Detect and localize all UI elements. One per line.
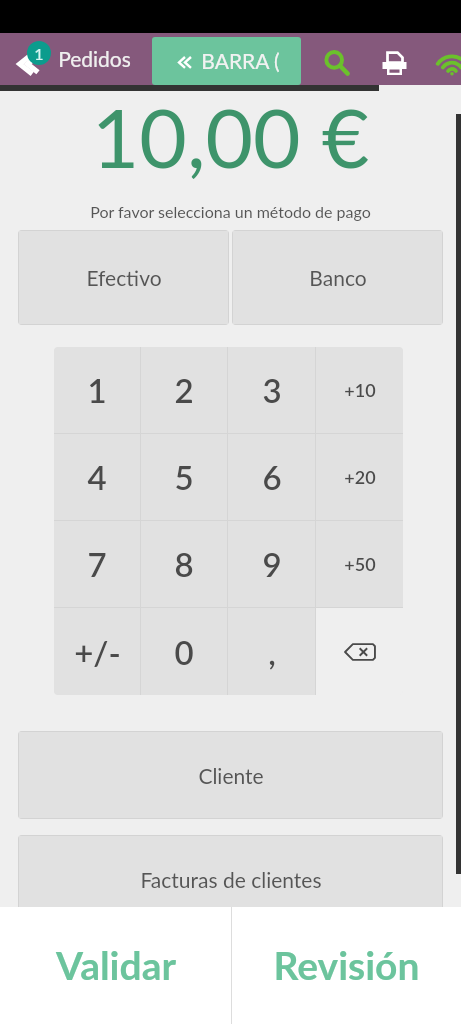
staticText: Facturas de clientes [140, 867, 322, 892]
button[interactable]: Buscar [311, 33, 363, 85]
staticText: 4 [87, 457, 107, 497]
button[interactable]: , [228, 608, 315, 695]
button[interactable]: 6 [228, 434, 315, 520]
staticText: 7 [87, 544, 107, 584]
staticText: 8 [174, 544, 194, 584]
button[interactable]: Facturas de clientes [19, 836, 442, 922]
staticText: Por favor selecciona un método de pago [0, 202, 461, 221]
button[interactable]: Cliente [19, 732, 442, 818]
staticText: +10 [344, 379, 376, 401]
other: Borrar [343, 635, 377, 669]
button[interactable]: +10 [316, 347, 403, 433]
button[interactable]: 8 [141, 521, 227, 607]
staticText: Revisión [273, 942, 420, 989]
staticText: Pedidos [58, 46, 131, 71]
button[interactable]: Validar [0, 907, 231, 1024]
staticText: 9 [262, 544, 282, 584]
staticText: 3 [262, 370, 282, 410]
button[interactable]: Efectivo [19, 231, 228, 324]
button[interactable]: Wifi [426, 33, 461, 85]
button[interactable]: Borrar [316, 608, 403, 695]
button[interactable]: 9 [228, 521, 315, 607]
staticText: 6 [262, 457, 282, 497]
button[interactable]: Imprimir [368, 33, 420, 85]
staticText: +/- [74, 632, 121, 672]
staticText: +20 [344, 466, 376, 488]
button[interactable]: 3 [228, 347, 315, 433]
button[interactable]: +20 [316, 434, 403, 520]
staticText: 0 [174, 632, 194, 672]
button[interactable]: 1 [54, 347, 140, 433]
button[interactable]: +/- [54, 608, 140, 695]
button[interactable]: 7 [54, 521, 140, 607]
button[interactable]: BARRA ( [152, 37, 301, 85]
staticText: , [268, 632, 276, 672]
staticText: Cliente [198, 763, 264, 788]
staticText: 1 [87, 370, 107, 410]
button[interactable]: 4 [54, 434, 140, 520]
staticText: 2 [174, 370, 194, 410]
button[interactable]: 2 [141, 347, 227, 433]
staticText: 1 [34, 44, 44, 63]
staticText: Banco [309, 265, 367, 290]
button[interactable]: Atrás [0, 33, 138, 85]
other: Atrás [13, 51, 39, 77]
staticText: +50 [344, 553, 376, 575]
button[interactable]: 0 [141, 608, 227, 695]
button[interactable]: Banco [233, 231, 442, 324]
staticText: Validar [56, 942, 176, 989]
staticText: Efectivo [86, 265, 162, 290]
staticText: 10,00 € [0, 87, 461, 185]
staticText: BARRA ( [201, 48, 280, 73]
staticText: 5 [174, 457, 194, 497]
button[interactable]: Revisión [232, 907, 461, 1024]
button[interactable]: 5 [141, 434, 227, 520]
button[interactable]: +50 [316, 521, 403, 607]
